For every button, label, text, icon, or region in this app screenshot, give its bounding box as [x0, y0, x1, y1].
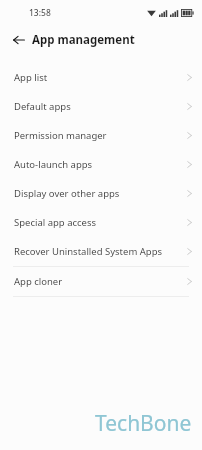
staticText: App cloner: [14, 275, 186, 288]
button[interactable]: Auto-launch apps: [0, 150, 202, 179]
staticText: Auto-launch apps: [14, 158, 186, 171]
button[interactable]: App cloner: [0, 267, 202, 296]
button[interactable]: Permission manager: [0, 121, 202, 150]
staticText: App list: [14, 71, 186, 84]
staticText: Display over other apps: [14, 187, 186, 200]
staticText: Permission manager: [14, 129, 186, 142]
button[interactable]: Display over other apps: [0, 179, 202, 208]
button[interactable]: App list: [0, 63, 202, 92]
staticText: Recover Uninstalled System Apps: [14, 245, 186, 258]
staticText: Special app access: [14, 216, 186, 229]
staticText: App management: [32, 32, 135, 48]
staticText: 13:58: [29, 7, 51, 19]
button[interactable]: Default apps: [0, 92, 202, 121]
button[interactable]: Back: [7, 28, 31, 52]
button[interactable]: Special app access: [0, 208, 202, 237]
staticText: Default apps: [14, 100, 186, 113]
staticText: TechBone: [95, 409, 192, 438]
button[interactable]: Recover Uninstalled System Apps: [0, 237, 202, 266]
